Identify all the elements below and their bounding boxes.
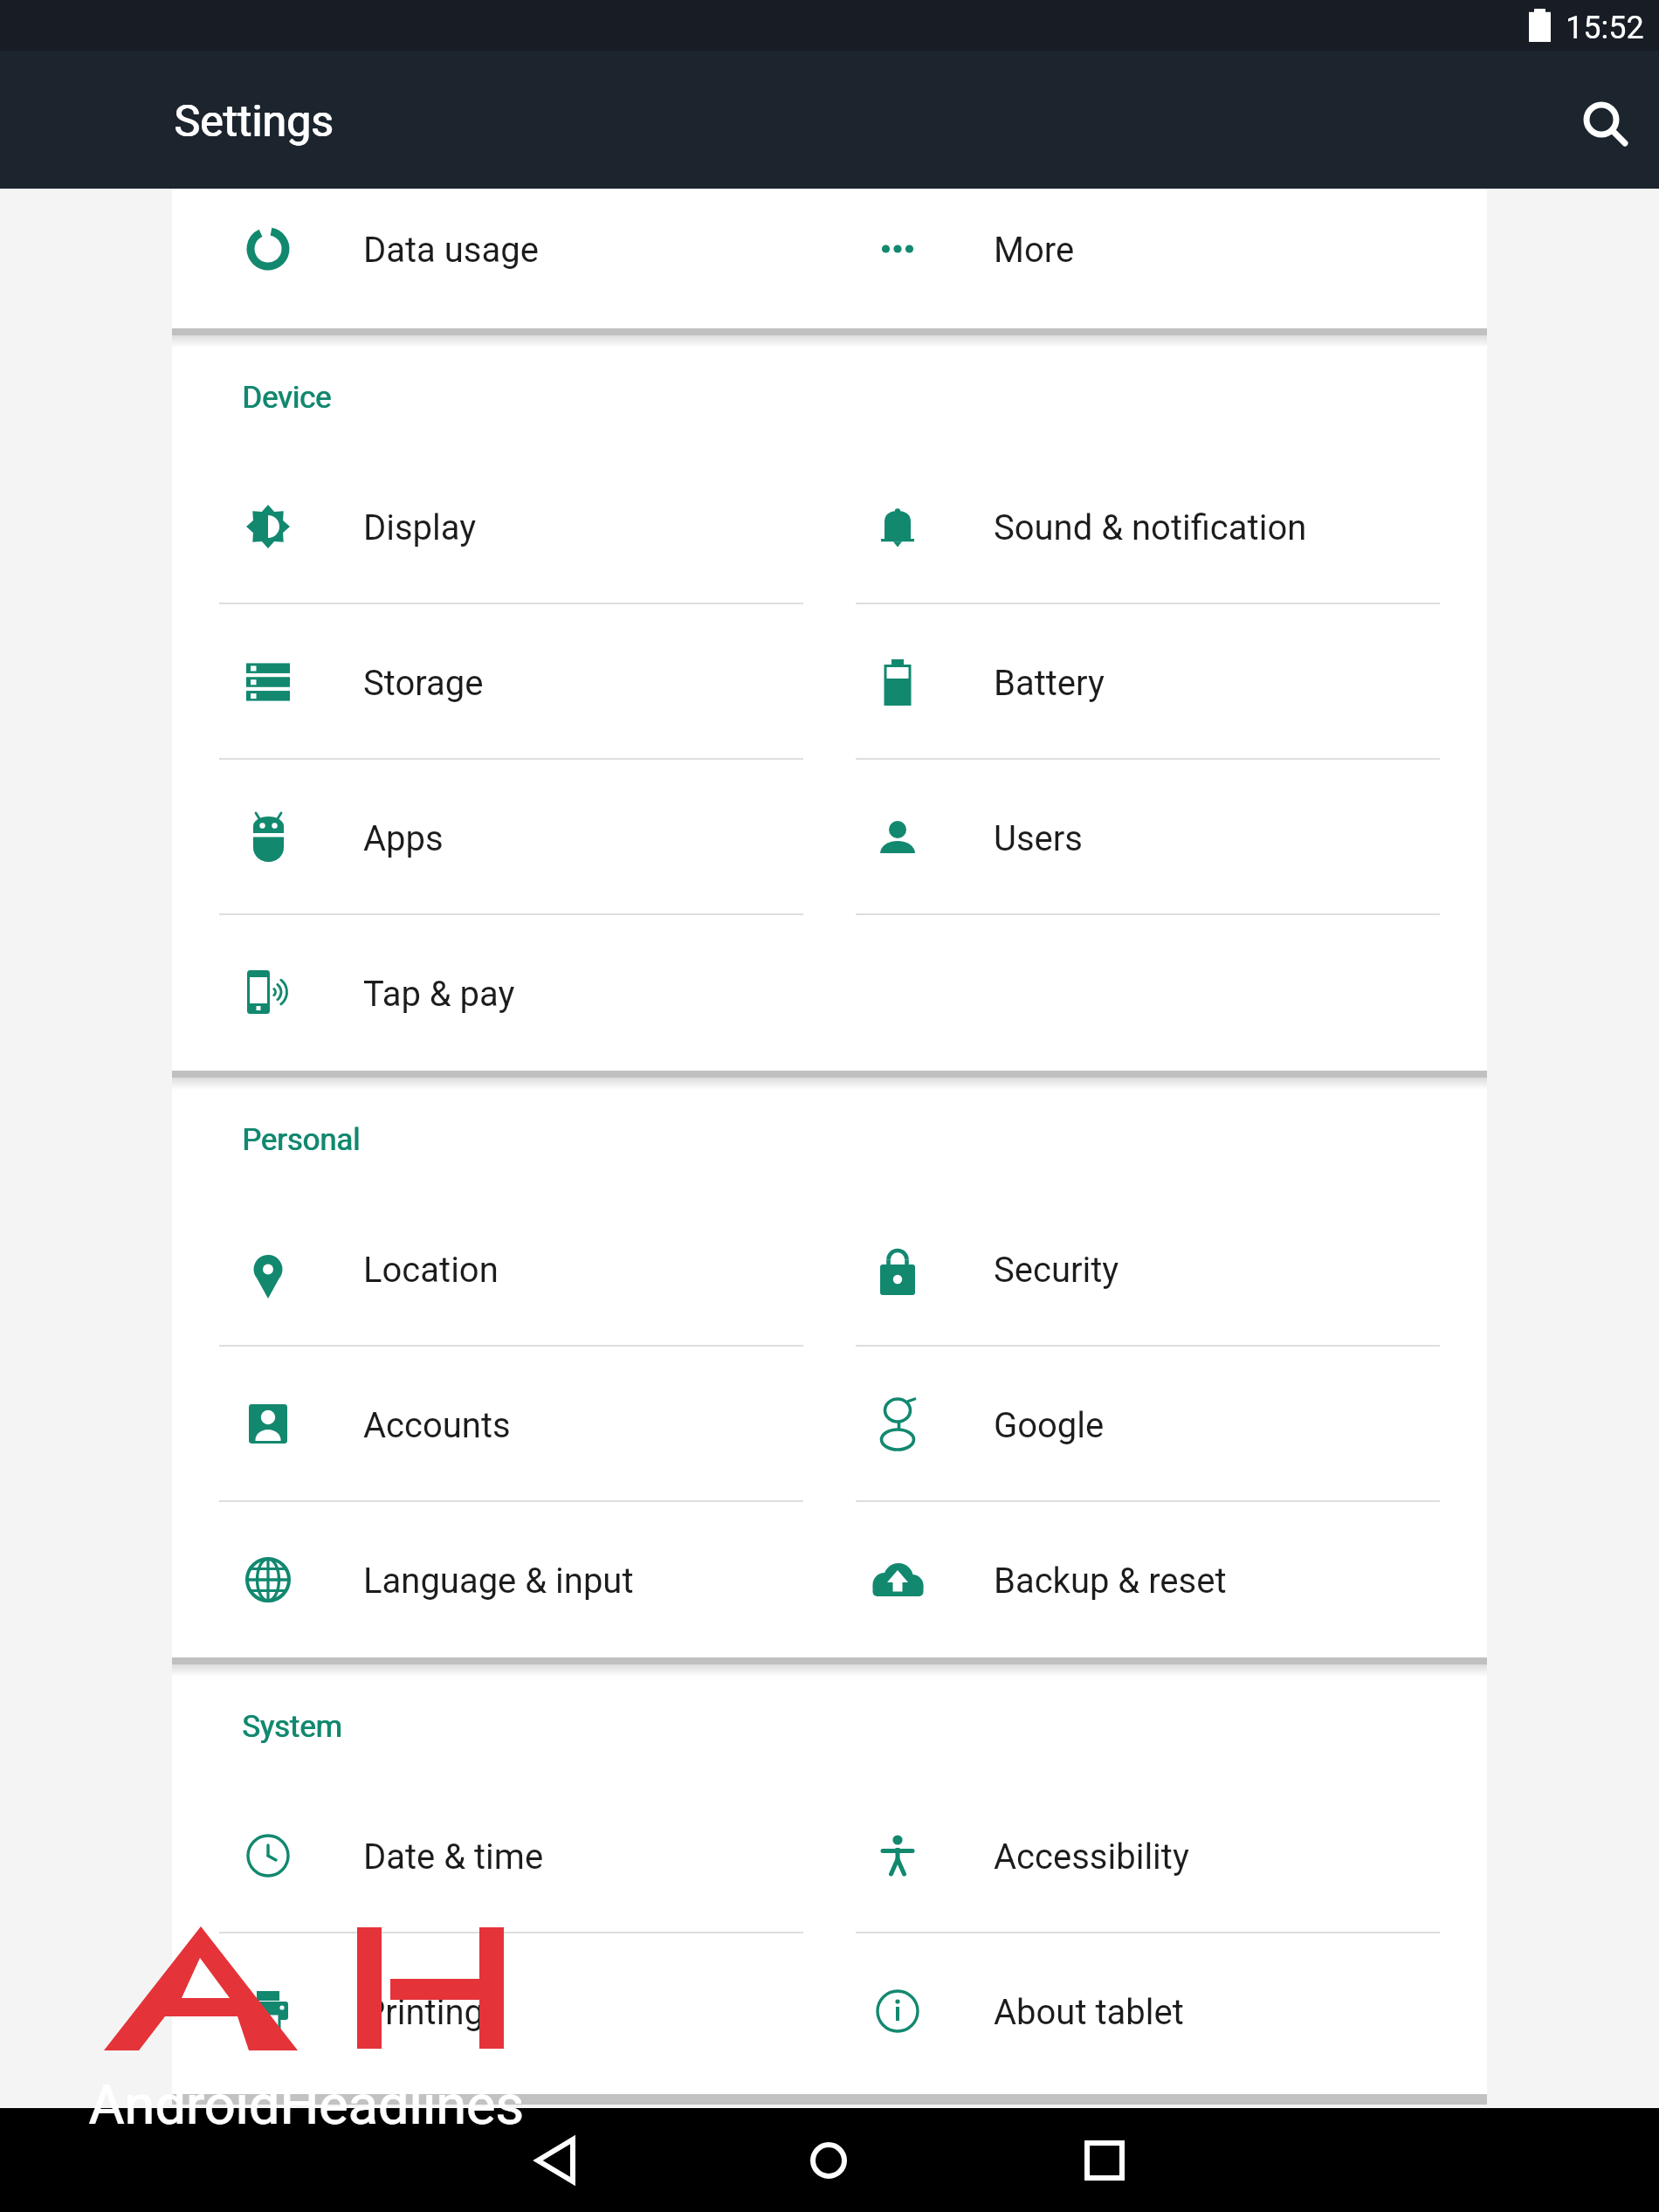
staticText: Tap & pay — [363, 974, 515, 1015]
button[interactable]: Home — [776, 2108, 881, 2212]
button[interactable]: Apps — [172, 760, 829, 915]
button[interactable]: Printing — [172, 1933, 829, 2089]
button[interactable]: Google — [829, 1347, 1487, 1502]
staticText: Backup & reset — [994, 1561, 1227, 1602]
staticText: Location — [363, 1250, 499, 1291]
staticText: More — [994, 230, 1075, 271]
staticText: Settings — [175, 96, 334, 148]
staticText: System — [242, 1709, 342, 1744]
button[interactable]: Storage — [172, 604, 829, 760]
staticText: 15:52 — [1566, 10, 1644, 46]
button[interactable]: Accounts — [172, 1347, 829, 1502]
button[interactable]: Search — [1559, 78, 1643, 162]
button[interactable]: Battery — [829, 604, 1487, 760]
button[interactable]: Accessibility — [829, 1778, 1487, 1933]
staticText: Language & input — [363, 1561, 634, 1602]
staticText: Personal — [242, 1122, 361, 1157]
staticText: Settings — [174, 96, 334, 148]
staticText: Personal — [243, 1122, 361, 1157]
staticText: AndroidHeadlines — [89, 2073, 525, 2138]
staticText: System — [243, 1709, 343, 1744]
staticText: Accounts — [363, 1405, 511, 1446]
button[interactable]: Data usage — [172, 179, 829, 319]
staticText: Sound & notification — [994, 507, 1307, 548]
staticText: Display — [363, 507, 477, 548]
button[interactable]: Security — [829, 1191, 1487, 1347]
button[interactable]: Recent apps — [1052, 2108, 1157, 2212]
button[interactable]: Location — [172, 1191, 829, 1347]
button[interactable]: About tablet — [829, 1933, 1487, 2089]
staticText: Printing — [363, 1992, 484, 2033]
staticText: Security — [994, 1250, 1119, 1291]
button[interactable]: Users — [829, 760, 1487, 915]
staticText: Data usage — [363, 230, 539, 271]
button[interactable]: Display — [172, 449, 829, 604]
button[interactable]: Date & time — [172, 1778, 829, 1933]
staticText: About tablet — [994, 1992, 1184, 2033]
button[interactable]: More — [829, 179, 1487, 319]
staticText: Device — [243, 380, 333, 415]
staticText: Users — [994, 818, 1083, 859]
button[interactable]: Language & input — [172, 1502, 829, 1657]
staticText: Accessibility — [994, 1836, 1189, 1878]
staticText: Apps — [363, 818, 444, 859]
staticText: Device — [242, 380, 332, 415]
button[interactable]: Tap & pay — [172, 915, 829, 1071]
staticText: AndroidHeadlines — [88, 2073, 524, 2138]
staticText: Date & time — [363, 1836, 544, 1878]
staticText: Battery — [994, 663, 1105, 704]
staticText: Storage — [363, 663, 484, 704]
button[interactable]: Back — [504, 2108, 609, 2212]
button[interactable]: Backup & reset — [829, 1502, 1487, 1657]
button[interactable]: Sound & notification — [829, 449, 1487, 604]
staticText: Google — [994, 1405, 1105, 1446]
